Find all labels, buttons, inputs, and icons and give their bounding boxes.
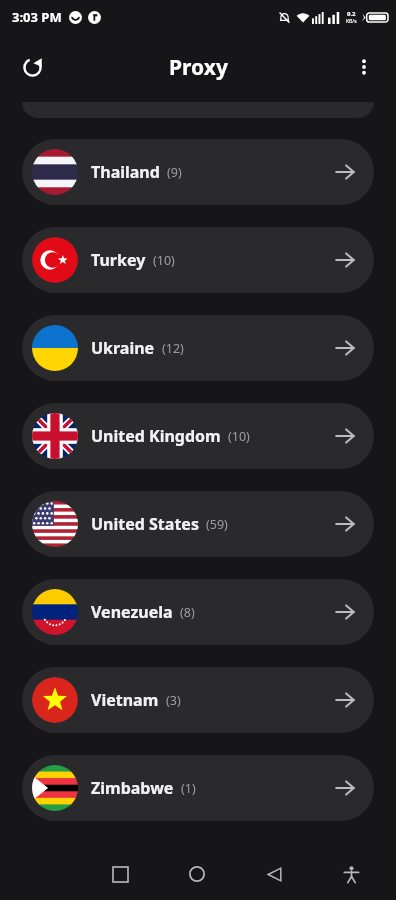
button[interactable]: Vietnam — [22, 667, 374, 733]
button[interactable]: Recent apps — [97, 851, 143, 897]
staticText: Zimbabwe — [91, 777, 174, 799]
staticText: United States — [91, 513, 199, 535]
button[interactable]: Zimbabwe — [22, 755, 374, 821]
staticText: (12) — [162, 340, 184, 357]
button[interactable]: More options — [342, 45, 386, 89]
staticText: (59) — [206, 516, 228, 533]
button[interactable]: Back — [251, 851, 297, 897]
button[interactable]: Thailand — [22, 139, 374, 205]
button[interactable] — [0, 102, 396, 118]
staticText: (3) — [166, 692, 181, 709]
staticText: United Kingdom — [91, 425, 221, 447]
staticText: Vietnam — [91, 689, 159, 711]
staticText: Ukraine — [91, 337, 155, 359]
staticText: 9.2 — [347, 10, 356, 18]
staticText: Venezuela — [91, 601, 173, 623]
staticText: Turkey — [91, 249, 146, 271]
staticText: (1) — [181, 780, 196, 797]
staticText: (9) — [167, 164, 182, 181]
staticText: (10) — [228, 428, 250, 445]
staticText: KB/s — [346, 18, 357, 25]
button[interactable]: Ukraine — [22, 315, 374, 381]
staticText: Proxy — [169, 53, 228, 82]
button[interactable]: Turkey — [22, 227, 374, 293]
button[interactable]: Refresh — [10, 45, 54, 89]
staticText: 3:03 PM — [12, 8, 62, 26]
button[interactable]: United States — [22, 491, 374, 557]
staticText: Thailand — [91, 161, 160, 183]
staticText: (8) — [180, 604, 195, 621]
button[interactable]: United Kingdom — [22, 403, 374, 469]
button[interactable]: Accessibility — [328, 851, 374, 897]
button[interactable]: Venezuela — [22, 579, 374, 645]
staticText: (10) — [153, 252, 175, 269]
button[interactable]: Home — [174, 851, 220, 897]
